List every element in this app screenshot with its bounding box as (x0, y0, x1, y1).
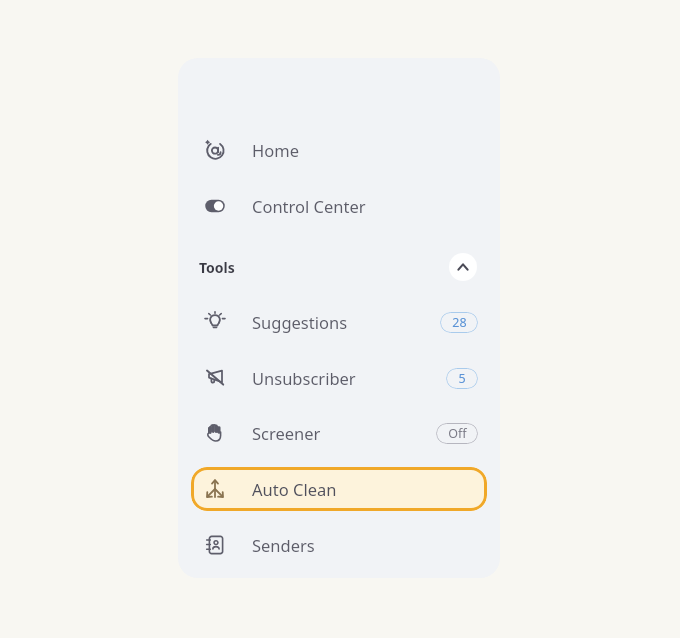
staticText: Home (252, 139, 299, 161)
staticText: Control Center (252, 195, 366, 217)
button[interactable]: Unsubscriber (191, 356, 487, 400)
staticText: Off (448, 425, 467, 442)
staticText: Tools (199, 258, 235, 277)
staticText: 28 (452, 314, 467, 331)
button[interactable]: Suggestions (191, 300, 487, 344)
staticText: 5 (458, 370, 466, 387)
staticText: Unsubscriber (252, 367, 356, 389)
staticText: Screener (252, 422, 321, 444)
button[interactable]: Collapse Tools (449, 253, 477, 281)
button[interactable]: Senders (191, 523, 487, 567)
staticText: Auto Clean (252, 478, 337, 500)
button[interactable]: Screener (191, 411, 487, 455)
button[interactable]: Control Center (191, 184, 487, 228)
button[interactable]: Auto Clean (191, 467, 487, 511)
button[interactable]: Home (191, 128, 487, 172)
staticText: Suggestions (252, 311, 348, 333)
staticText: Senders (252, 534, 315, 556)
